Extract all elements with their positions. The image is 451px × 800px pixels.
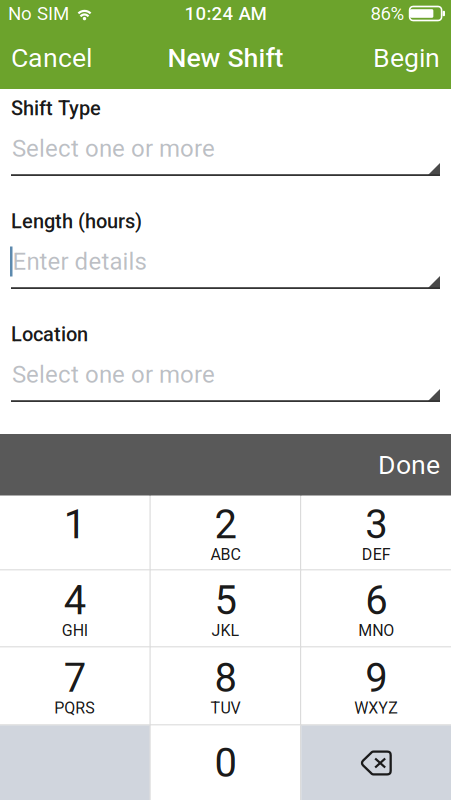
button[interactable]: 7 [0, 647, 150, 724]
staticText: 6 [365, 577, 387, 624]
button[interactable]: Done [362, 434, 451, 496]
staticText: 1 [64, 501, 86, 548]
staticText: Done [378, 449, 440, 481]
button[interactable]: Location [0, 315, 451, 402]
staticText: New Shift [167, 42, 283, 74]
staticText: 0 [214, 740, 236, 786]
staticText: Length (hours) [11, 210, 142, 233]
staticText: No SIM [8, 3, 69, 24]
button[interactable]: 9 [301, 647, 451, 724]
button[interactable]: 5 [151, 570, 300, 646]
button[interactable]: 8 [151, 647, 300, 724]
staticText: ABC [210, 545, 240, 564]
staticText: MNO [358, 621, 394, 640]
staticText: 9 [365, 655, 387, 701]
staticText: GHI [62, 621, 88, 640]
button[interactable]: Shift Type [0, 89, 451, 176]
button[interactable]: 6 [301, 570, 451, 646]
staticText: DEF [362, 545, 391, 564]
staticText: 86% [371, 3, 405, 24]
staticText: 10:24 AM [184, 3, 266, 24]
button[interactable]: Cancel [0, 34, 106, 82]
staticText: JKL [211, 621, 239, 640]
staticText: Shift Type [11, 97, 101, 120]
button[interactable]: 1 [0, 495, 150, 569]
button[interactable]: Begin [359, 34, 451, 82]
button[interactable]: 4 [0, 570, 150, 646]
staticText: Select one or more [12, 360, 215, 388]
staticText: 7 [64, 655, 86, 701]
button[interactable]: Length (hours) [0, 202, 451, 289]
staticText: 2 [214, 501, 236, 548]
staticText: 4 [64, 577, 86, 624]
button[interactable]: 3 [301, 495, 451, 569]
staticText: WXYZ [354, 699, 398, 717]
staticText: Enter details [12, 247, 146, 275]
button[interactable]: Delete [301, 725, 451, 800]
staticText: 3 [365, 501, 387, 548]
staticText: PQRS [54, 699, 95, 717]
staticText: 8 [214, 655, 236, 701]
button[interactable]: 2 [151, 495, 300, 569]
button[interactable]: 0 [151, 725, 300, 800]
staticText: Select one or more [12, 134, 215, 162]
staticText: TUV [210, 699, 240, 717]
staticText: Cancel [11, 42, 92, 74]
staticText: Begin [373, 42, 440, 74]
staticText: 5 [214, 577, 236, 624]
staticText: Location [11, 323, 88, 346]
